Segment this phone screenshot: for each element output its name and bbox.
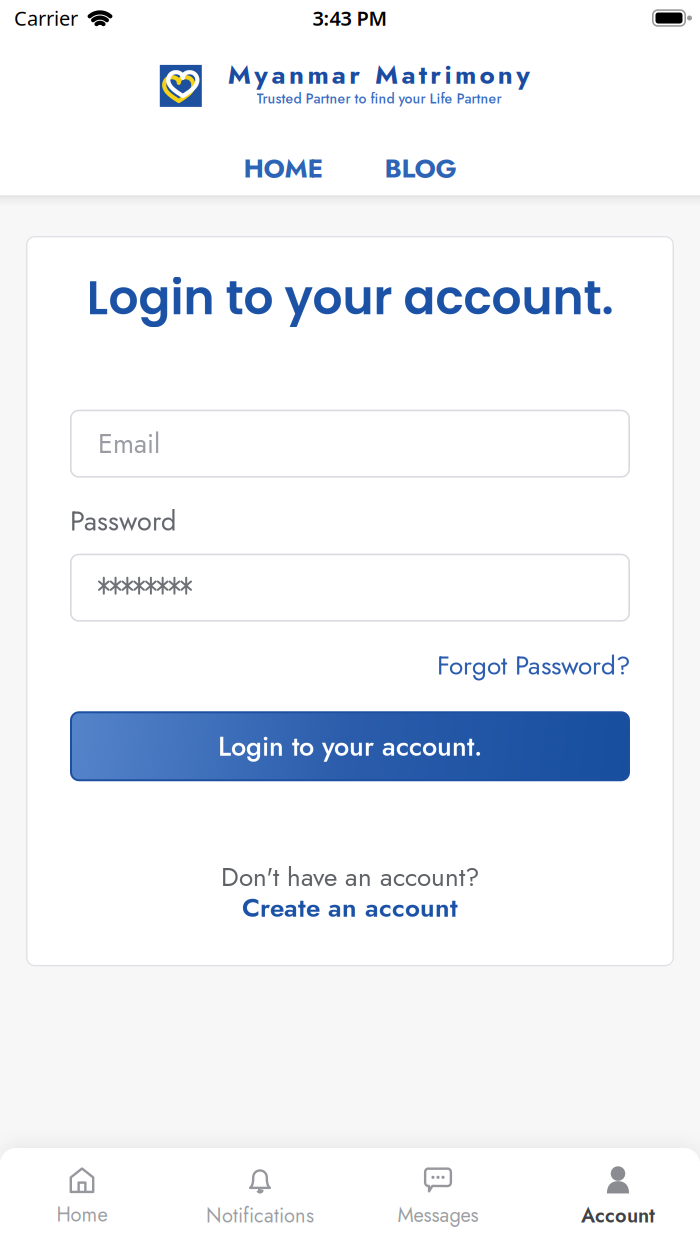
button[interactable]: BLOG [384, 150, 456, 187]
staticText: t [419, 56, 427, 94]
staticText: M [375, 56, 398, 94]
button[interactable]: Account [536, 1166, 700, 1230]
button[interactable]: HOME [243, 150, 323, 187]
button[interactable]: Password value [70, 554, 630, 622]
staticText: Don't have an account? [221, 858, 479, 896]
staticText: o [479, 56, 494, 94]
staticText: Create an account [242, 889, 458, 926]
button[interactable]: Email [70, 410, 630, 478]
staticText: M [228, 56, 251, 94]
staticText: a [332, 56, 346, 94]
staticText: Login to your account. [218, 727, 482, 766]
staticText: HOME [243, 150, 323, 187]
staticText: Carrier [14, 5, 78, 31]
button[interactable]: Messages [345, 1166, 531, 1229]
staticText: i [445, 56, 452, 94]
button[interactable]: Notifications [167, 1166, 353, 1230]
staticText: Messages [397, 1200, 478, 1229]
staticText: Notifications [206, 1201, 314, 1230]
staticText: a [401, 56, 415, 94]
button[interactable]: Home [0, 1167, 164, 1229]
staticText: y [516, 56, 530, 94]
staticText: Trusted Partner to find your Life Partne… [256, 89, 501, 109]
staticText: r [349, 56, 360, 94]
staticText: Account [581, 1201, 655, 1230]
staticText: Login to your account. [86, 265, 613, 331]
button[interactable]: Create an account [242, 889, 458, 926]
staticText: n [289, 56, 304, 94]
staticText: Home [56, 1200, 107, 1229]
staticText: 3:43 PM [312, 5, 387, 31]
staticText: r [430, 56, 441, 94]
staticText: m [307, 56, 328, 94]
staticText: a [272, 56, 286, 94]
staticText: Forgot Password? [437, 647, 630, 684]
staticText: n [498, 56, 513, 94]
button[interactable]: Login to your account. [70, 711, 630, 781]
button[interactable]: Forgot Password? [437, 647, 630, 684]
staticText: BLOG [384, 150, 456, 187]
staticText: y [254, 56, 268, 94]
staticText: Password [70, 502, 176, 541]
staticText: m [455, 56, 476, 94]
staticText: Email [98, 424, 160, 463]
